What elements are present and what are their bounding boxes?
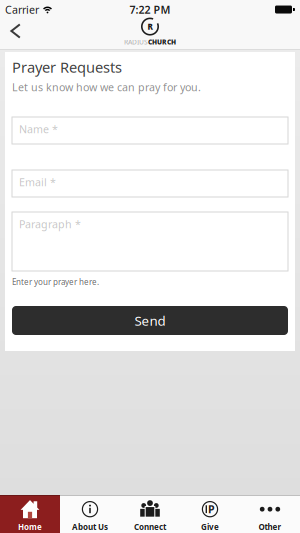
button[interactable]: Back [0,23,21,44]
staticText: P [208,502,215,516]
button[interactable]: Connect [120,495,180,533]
button[interactable]: Home [0,495,60,533]
staticText: About Us [72,522,108,532]
button[interactable]: Send [12,306,288,335]
staticText: Prayer Requests [12,57,122,77]
button[interactable]: Email * [12,170,288,197]
staticText: Name * [19,122,58,136]
button[interactable]: Other [240,495,300,533]
button[interactable]: About Us [60,495,120,533]
staticText: 7:22 PM [129,2,170,17]
button[interactable]: Paragraph * [12,212,288,271]
staticText: Give [201,522,219,532]
staticText: Send [134,312,165,329]
staticText: Home [18,522,42,532]
staticText: Let us know how we can pray for you. [12,80,201,94]
staticText: Other [258,522,281,532]
staticText: Enter your prayer here. [12,277,99,287]
button[interactable]: Name * [12,117,288,144]
staticText: Paragraph * [19,217,81,231]
button[interactable]: P [180,495,240,533]
staticText: RADIUS [124,38,148,46]
staticText: Email * [19,175,56,189]
staticText: R [147,21,152,32]
staticText: Carrier [5,2,39,17]
staticText: Connect [134,522,166,532]
staticText: CHURCH [148,38,176,46]
